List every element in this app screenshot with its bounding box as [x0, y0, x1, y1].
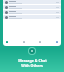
staticText: Message & Chat	[18, 58, 47, 63]
button[interactable]	[3, 10, 61, 14]
button[interactable]: Chats	[5, 40, 9, 44]
button[interactable]	[3, 0, 61, 4]
button[interactable]: Profile	[55, 40, 59, 44]
button[interactable]: New chat	[28, 47, 36, 55]
button[interactable]: Contacts	[38, 40, 42, 44]
button[interactable]	[3, 5, 61, 9]
button[interactable]: Calls	[22, 40, 26, 44]
button[interactable]	[3, 15, 61, 19]
staticText: With Others	[21, 63, 43, 68]
